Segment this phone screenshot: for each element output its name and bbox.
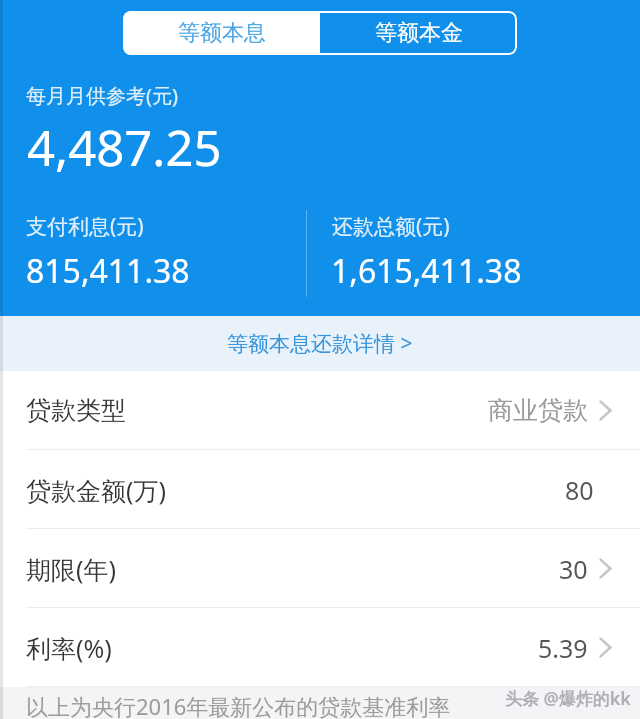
staticText: 4,487.25 [27, 114, 222, 181]
button[interactable]: 利率(%) [0, 608, 640, 687]
staticText: 贷款类型 [26, 395, 126, 426]
button[interactable]: 贷款类型 [0, 371, 640, 450]
staticText: 支付利息(元) [26, 212, 144, 241]
button[interactable]: 贷款金额(万) [0, 450, 640, 529]
staticText: 等额本息 [178, 19, 266, 47]
button[interactable]: 等额本息还款详情 > [0, 316, 640, 371]
button[interactable]: 等额本息 [123, 11, 320, 55]
staticText: 头条 @爆炸的kk [505, 687, 631, 710]
staticText: 5.39 [538, 631, 588, 665]
staticText: 商业贷款 [488, 395, 588, 426]
button[interactable]: 等额本金 [320, 11, 517, 55]
staticText: 等额本息还款详情 > [227, 329, 413, 358]
staticText: 每月月供参考(元) [26, 82, 178, 109]
staticText: 80 [565, 473, 594, 507]
staticText: 还款总额(元) [332, 212, 450, 241]
staticText: 期限(年) [26, 552, 117, 586]
staticText: 30 [559, 552, 588, 586]
staticText: 等额本金 [375, 19, 463, 47]
staticText: 贷款金额(万) [26, 473, 167, 507]
staticText: 利率(%) [26, 631, 112, 665]
button[interactable]: 期限(年) [0, 529, 640, 608]
staticText: 以上为央行2016年最新公布的贷款基准利率 [26, 691, 451, 719]
staticText: 815,411.38 [26, 249, 190, 293]
staticText: 1,615,411.38 [331, 249, 522, 293]
